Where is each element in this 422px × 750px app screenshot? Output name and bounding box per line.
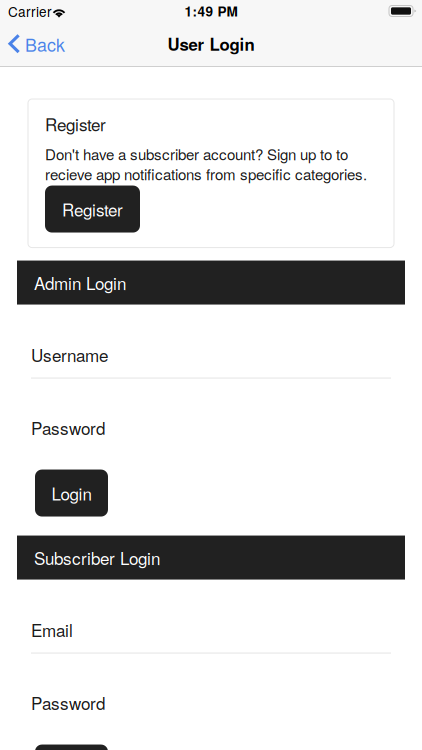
staticText: Username — [31, 342, 108, 367]
staticText: Register — [62, 197, 123, 221]
staticText: Password — [31, 415, 105, 440]
staticText: Don't have a subscriber account? Sign up… — [45, 143, 367, 185]
staticText: Password — [31, 690, 105, 715]
staticText: Login — [51, 481, 91, 505]
staticText: Admin Login — [34, 270, 126, 295]
staticText: Subscriber Login — [34, 545, 160, 570]
staticText: Register — [45, 112, 106, 136]
staticText: Back — [25, 31, 65, 57]
staticText: Carrier — [8, 1, 52, 21]
staticText: 1:49 PM — [184, 1, 237, 21]
button[interactable]: Login — [35, 470, 108, 517]
staticText: Email — [31, 617, 73, 642]
button[interactable]: Login — [35, 745, 108, 750]
button[interactable]: Register — [45, 186, 140, 233]
button[interactable]: Back — [0, 22, 79, 66]
staticText: User Login — [167, 32, 254, 56]
